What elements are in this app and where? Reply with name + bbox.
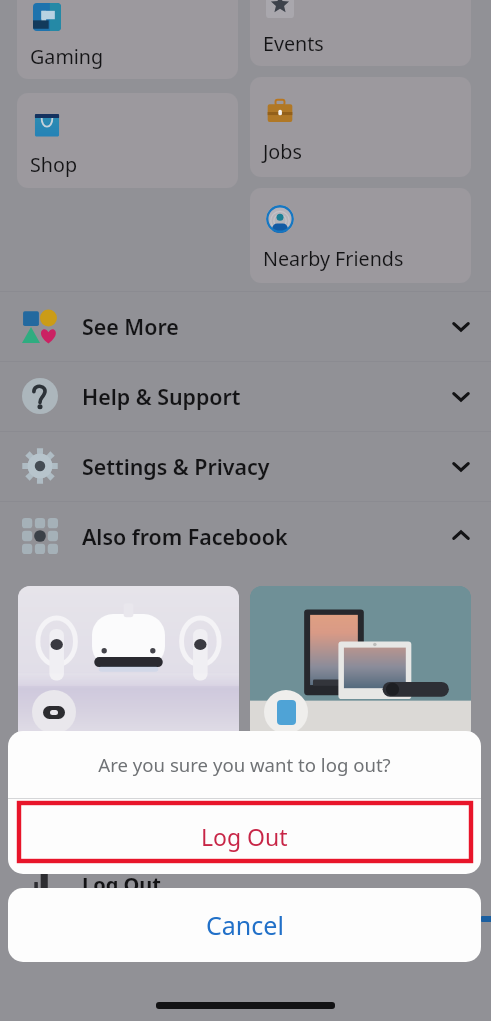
staticText: See More [82,312,179,341]
button[interactable]: Cancel [8,888,481,962]
staticText: Help & Support [82,382,241,411]
staticText: Nearby Friends [263,245,404,272]
button[interactable]: Nearby Friends [250,188,471,283]
button[interactable]: Gaming [17,0,238,79]
button[interactable]: Jobs [250,77,471,177]
staticText: Also from Facebook [82,522,288,551]
staticText: Cancel [206,908,284,942]
staticText: Settings & Privacy [82,452,270,481]
button[interactable]: Shop [17,93,238,188]
staticText: Jobs [263,138,302,165]
staticText: Are you sure you want to log out? [98,752,391,777]
button[interactable]: Log Out [0,845,491,905]
button[interactable]: Settings & Privacy [0,431,491,501]
button[interactable] [18,586,239,742]
button[interactable]: Events [250,0,471,66]
staticText: Events [263,30,324,57]
button[interactable]: Also from Facebook [0,501,491,571]
button[interactable]: See More [0,291,491,361]
staticText: Log Out [82,871,162,898]
button[interactable]: Log Out [8,799,481,874]
staticText: Shop [30,151,77,178]
staticText: Gaming [30,43,104,70]
button[interactable]: Help & Support [0,361,491,431]
staticText: Log Out [201,821,288,852]
button[interactable] [250,586,471,742]
